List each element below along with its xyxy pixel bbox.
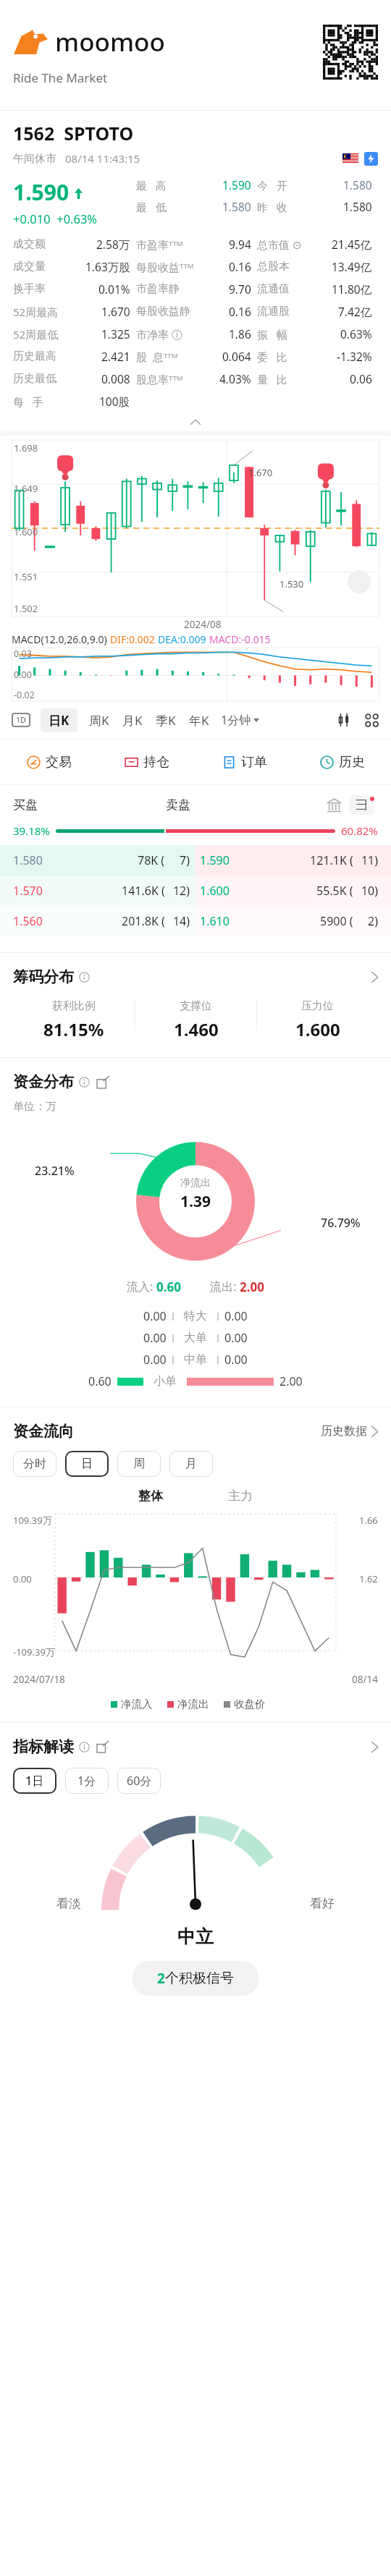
staticText: 1.62 [359, 1572, 378, 1585]
button[interactable]: 持仓 [98, 740, 195, 784]
staticText: 1.325 [101, 326, 130, 342]
button[interactable]: 1.580 [13, 845, 190, 876]
staticText: 个积极信号 [165, 1970, 234, 1987]
staticText: 历史数据 [321, 1424, 367, 1439]
staticText: 0.00 [224, 1308, 248, 1324]
button[interactable]: 周 [117, 1451, 161, 1477]
staticText: 23.21% [35, 1163, 75, 1179]
button[interactable]: Chart type [336, 712, 352, 728]
staticText: 1.698 [14, 441, 38, 454]
button[interactable] [0, 412, 391, 431]
staticText: 日K [49, 712, 70, 729]
staticText: 周K [89, 712, 109, 729]
button[interactable]: 1.590 [200, 845, 378, 876]
staticText: 资金流向 [13, 1422, 74, 1441]
button[interactable]: 彐 [350, 795, 374, 815]
staticText: 股息率ᵀᵀᴹ [136, 372, 183, 386]
button[interactable]: More indicators [363, 712, 379, 728]
staticText: 股 息ᵀᵀᴹ [136, 349, 178, 364]
button[interactable]: 周K [88, 708, 111, 732]
staticText: 单位：万 [13, 1100, 56, 1114]
staticText: 振 幅 [257, 327, 287, 342]
staticText: 最 高 [136, 178, 167, 192]
staticText: 08/14 11:43:15 [65, 151, 140, 166]
staticText: 分时 [23, 1457, 46, 1471]
staticText: 市盈率ᵀᵀᴹ [136, 237, 183, 252]
button[interactable]: 2 [133, 1961, 258, 1996]
staticText: 压力位 [301, 999, 334, 1013]
staticText: 每股收益ᵀᵀᴹ [136, 260, 194, 274]
button[interactable]: 历史数据 [321, 1424, 378, 1439]
staticText: 1.590 [222, 177, 251, 192]
staticText: 52周最低 [13, 327, 59, 342]
other: Level 1 quote [364, 152, 378, 166]
button[interactable]: Share [97, 1741, 109, 1753]
button[interactable]: 1.560 [13, 906, 190, 936]
button[interactable]: 1.610 [200, 906, 378, 936]
staticText: Ride The Market [13, 69, 108, 86]
staticText: -1.32% [337, 349, 372, 364]
staticText: 净流出 [177, 1698, 209, 1711]
staticText: 特大 [181, 1309, 210, 1323]
staticText: 流通值 [257, 282, 290, 296]
staticText: 筹码分布 [13, 967, 74, 986]
button[interactable]: 历史 [293, 740, 391, 784]
staticText: 委 比 [257, 349, 287, 364]
staticText: 整体 [138, 1488, 163, 1504]
staticText: 总股本 [257, 260, 290, 274]
staticText: 0.60 [88, 1373, 112, 1389]
button[interactable]: 1.600 [200, 876, 378, 906]
button[interactable]: 60分 [117, 1768, 161, 1794]
staticText: 收盘价 [234, 1698, 266, 1711]
staticText: 流入: [127, 1279, 156, 1295]
staticText: 净流出 [180, 1177, 211, 1190]
button[interactable]: 年K [188, 708, 211, 732]
button[interactable]: 1D [12, 713, 30, 727]
staticText: 周 [133, 1457, 145, 1471]
staticText: 1.86 [229, 326, 251, 342]
staticText: 看淡 [56, 1896, 81, 1911]
staticText: 月K [122, 712, 143, 729]
button[interactable]: Broker [325, 797, 342, 814]
button[interactable]: 季K [154, 708, 177, 732]
staticText: 109.39万 [13, 1514, 52, 1527]
staticText: 彐 [356, 797, 368, 813]
staticText: 卖盘 [166, 797, 190, 813]
staticText: 9.70 [229, 281, 251, 297]
button[interactable]: 1.570 [13, 876, 190, 906]
button[interactable]: 1分钟 [221, 712, 259, 728]
staticText: 1.580 [343, 177, 372, 192]
staticText: 0.00 [224, 1352, 248, 1368]
button[interactable]: 订单 [195, 740, 293, 784]
staticText: 11) [353, 852, 378, 868]
staticText: 季K [156, 712, 176, 729]
staticText: 1.560 [13, 913, 43, 929]
button[interactable]: 月K [121, 708, 144, 732]
staticText: 1.590 [200, 852, 230, 868]
button[interactable]: 月 [169, 1451, 213, 1477]
staticText: 2.00 [279, 1373, 303, 1389]
staticText: 0.00 [143, 1308, 167, 1324]
staticText: 0.008 [101, 371, 130, 386]
button[interactable]: 日K [41, 708, 77, 732]
button[interactable]: Share [97, 1076, 109, 1088]
staticText: 获利比例 [52, 999, 96, 1013]
staticText: 12) [165, 883, 190, 899]
button[interactable]: 1分 [65, 1768, 109, 1794]
staticText: -0.02 [14, 689, 35, 701]
button[interactable]: 交易 [0, 740, 98, 784]
button[interactable]: 日 [65, 1451, 109, 1477]
staticText: DIF:0.002 [110, 632, 158, 646]
button[interactable]: 1日 [13, 1768, 56, 1794]
button[interactable]: 分时 [13, 1451, 56, 1477]
staticText: 看好 [310, 1896, 335, 1911]
staticText: 100股 [99, 394, 130, 409]
staticText: 1.610 [200, 913, 230, 929]
staticText: 0.00 [143, 1352, 167, 1368]
staticText: 0.00 [13, 1572, 32, 1585]
staticText: 201.8K ( [122, 913, 165, 929]
staticText: 历史最高 [13, 349, 56, 363]
staticText: 1.39 [180, 1191, 211, 1212]
staticText: 2.58万 [96, 237, 130, 252]
button[interactable]: 筹码分布 [13, 967, 378, 986]
